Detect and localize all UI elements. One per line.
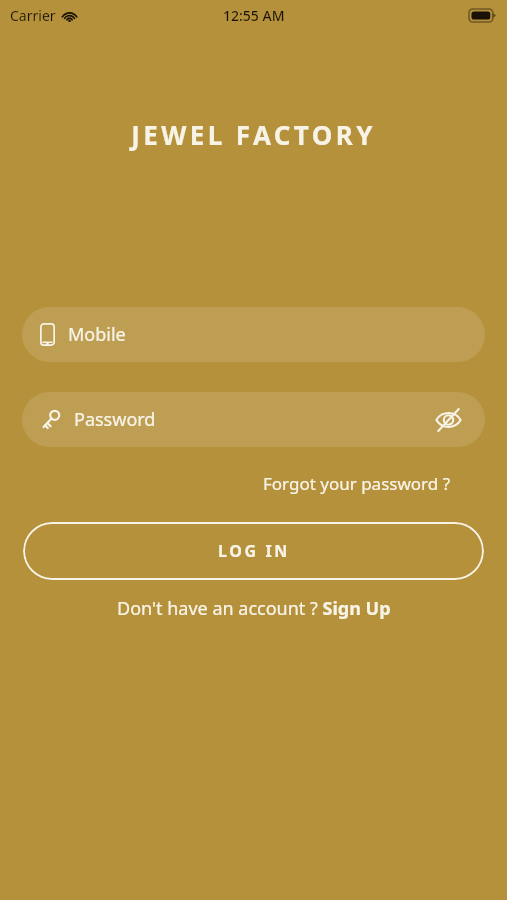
- button[interactable]: Mobile: [22, 307, 485, 362]
- staticText: 12:55 AM: [223, 6, 285, 25]
- button[interactable]: Forgot your password ?: [257, 467, 457, 500]
- button[interactable]: Show password: [431, 403, 465, 437]
- button[interactable]: Password: [22, 392, 485, 447]
- button[interactable]: LOG IN: [23, 522, 484, 580]
- staticText: LOG IN: [218, 540, 290, 562]
- staticText: Carrier: [10, 6, 56, 25]
- button[interactable]: Don't have an account ? Sign Up: [111, 591, 397, 626]
- staticText: Mobile: [68, 322, 465, 347]
- staticText: Password: [74, 407, 431, 432]
- staticText: JEWEL FACTORY: [0, 117, 507, 152]
